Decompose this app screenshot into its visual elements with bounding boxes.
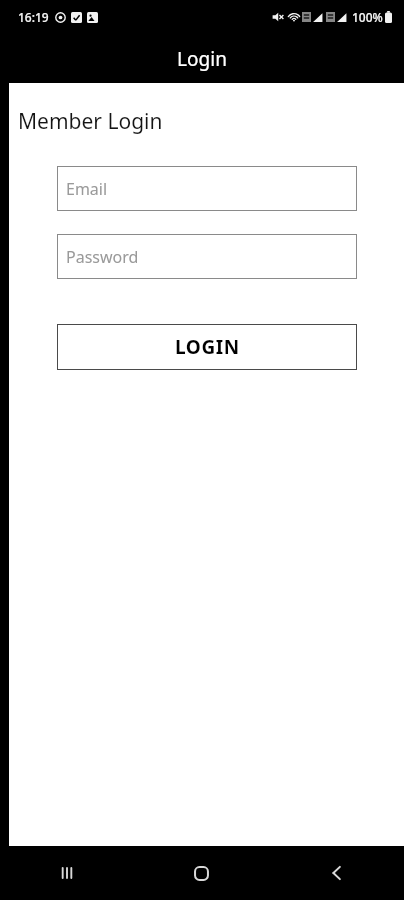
staticText: 100% xyxy=(352,9,383,25)
button[interactable]: Password xyxy=(57,234,357,279)
staticText: 16:19 xyxy=(18,9,49,25)
button[interactable]: Home xyxy=(134,846,269,900)
button[interactable]: Email xyxy=(57,166,357,211)
staticText: Member Login xyxy=(18,107,163,136)
button[interactable]: Back xyxy=(269,846,404,900)
button[interactable]: LOGIN xyxy=(57,324,357,370)
button[interactable]: Recent apps xyxy=(0,846,134,900)
staticText: Login xyxy=(177,46,227,72)
staticText: Email xyxy=(66,178,108,200)
staticText: Password xyxy=(66,246,139,268)
staticText: LOGIN xyxy=(175,334,240,360)
